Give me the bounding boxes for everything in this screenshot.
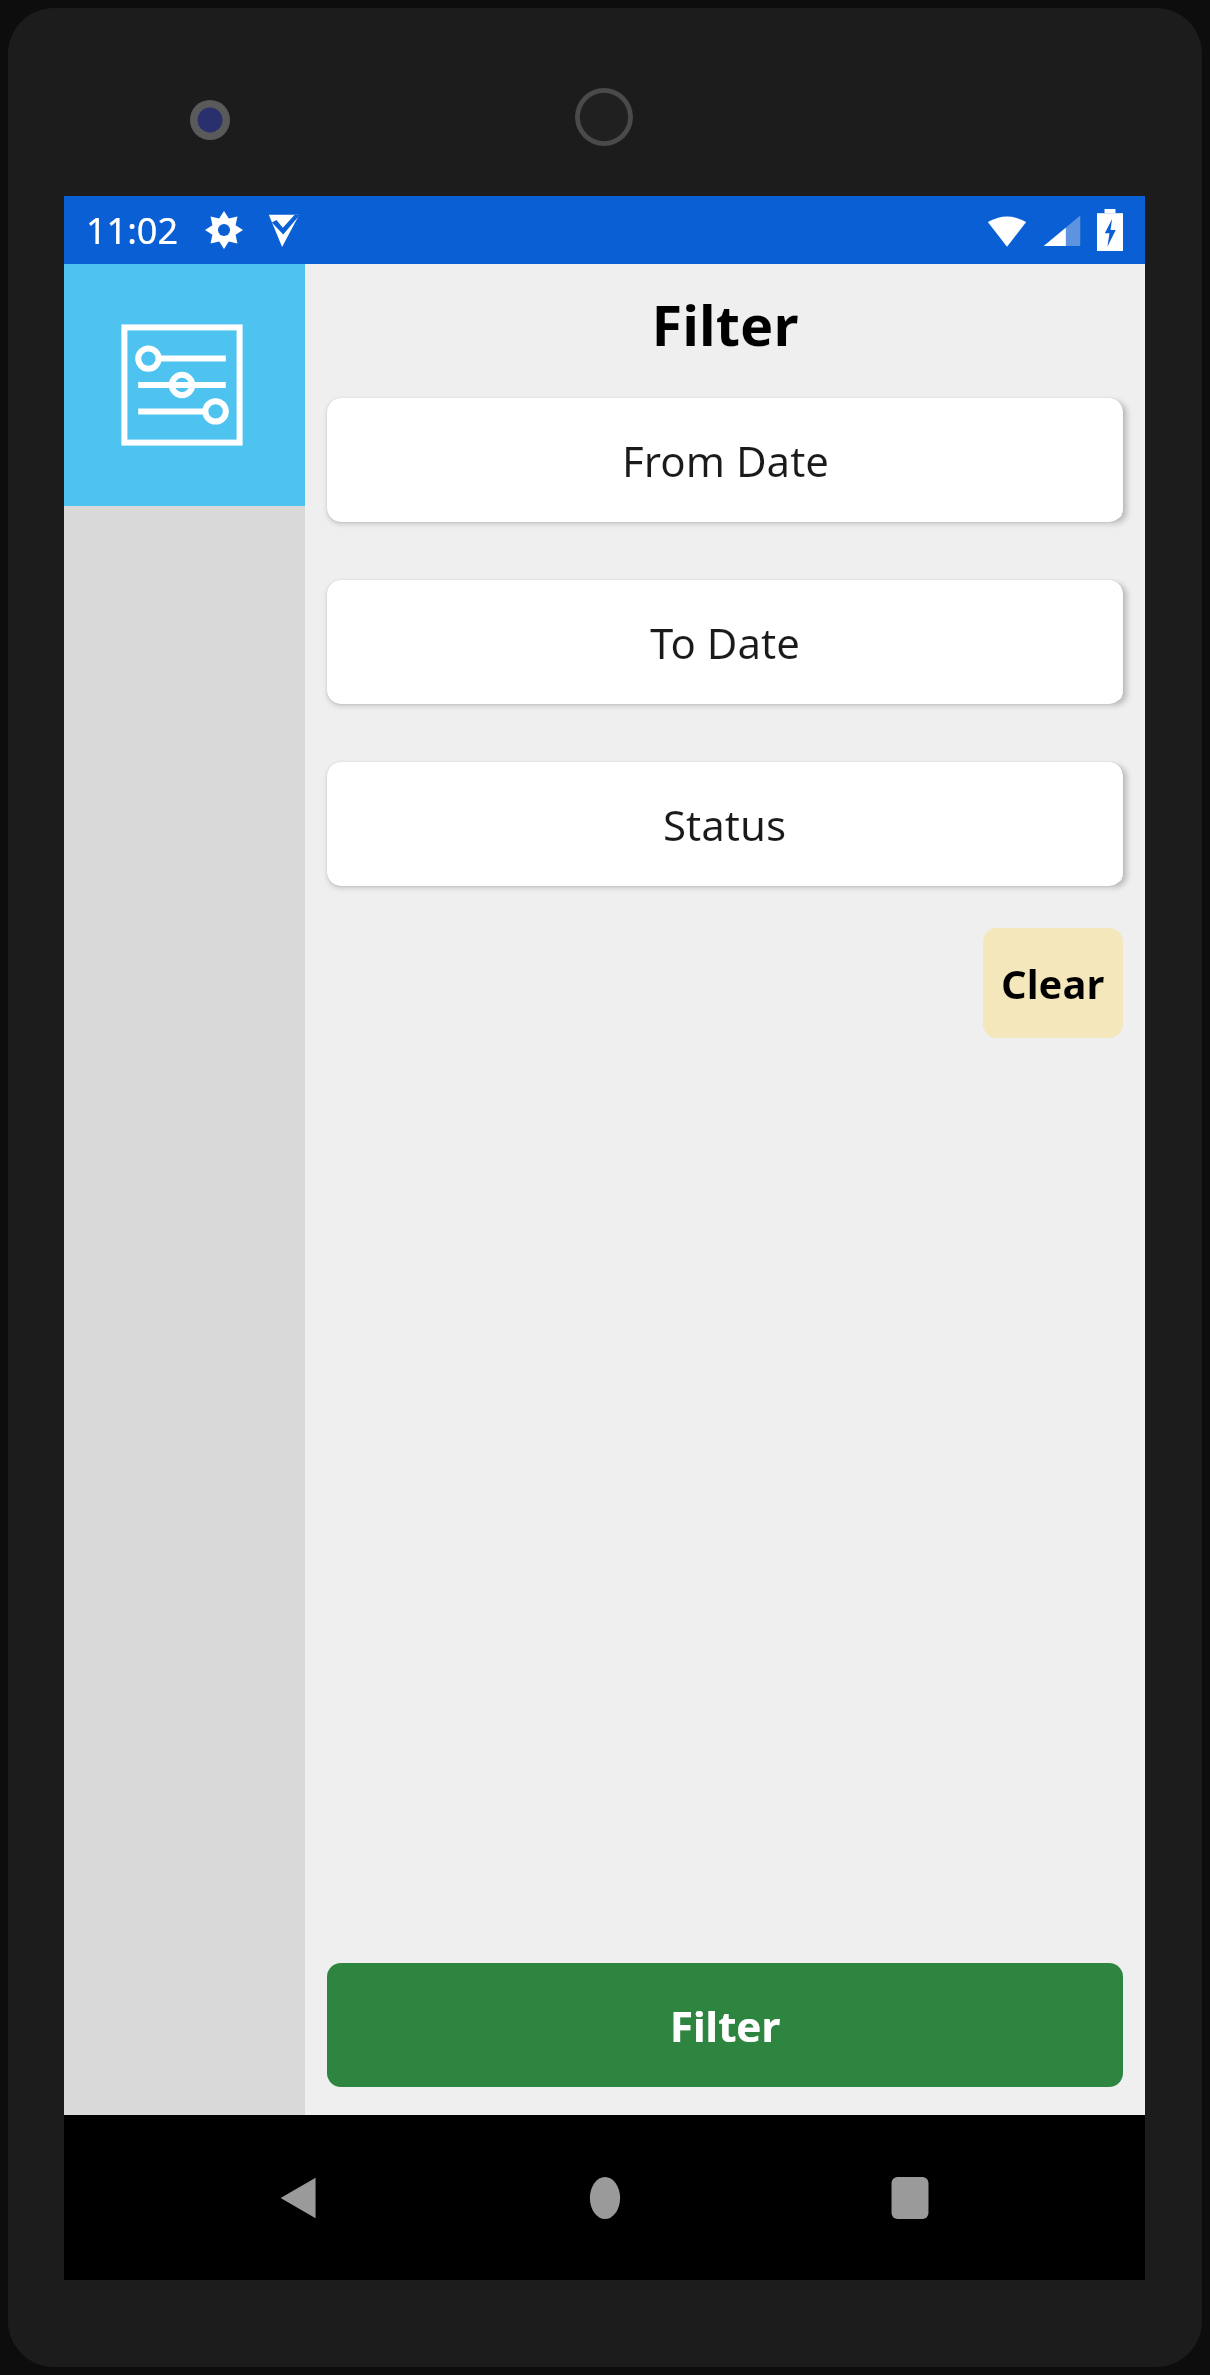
staticText: Filter xyxy=(305,286,1145,362)
button[interactable]: Home xyxy=(535,2128,675,2268)
button[interactable]: From Date xyxy=(327,398,1123,522)
button[interactable]: Back xyxy=(229,2128,369,2268)
staticText: From Date xyxy=(622,432,829,489)
button[interactable]: Filter xyxy=(327,1963,1123,2087)
button[interactable]: Recent apps xyxy=(840,2128,980,2268)
staticText: Filter xyxy=(670,1997,781,2054)
button[interactable]: Status xyxy=(327,762,1123,886)
staticText: Clear xyxy=(1001,956,1105,1010)
staticText: 11:02 xyxy=(86,206,179,255)
button[interactable]: Clear xyxy=(983,928,1123,1038)
button[interactable]: To Date xyxy=(327,580,1123,704)
staticText: Status xyxy=(663,796,787,853)
button[interactable]: Filter settings xyxy=(64,264,305,506)
staticText: To Date xyxy=(650,614,800,671)
